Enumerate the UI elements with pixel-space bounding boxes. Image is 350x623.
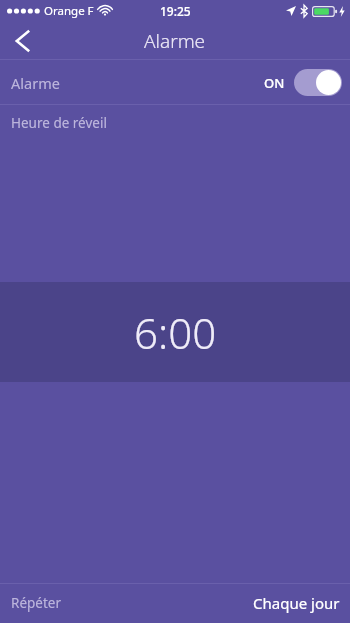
button[interactable]: Alarme [0, 60, 350, 105]
staticText: Chaque jour [253, 593, 340, 613]
button[interactable]: 6:00 [0, 282, 350, 382]
staticText: Orange F [44, 3, 94, 19]
staticText: Répéter [11, 594, 61, 612]
staticText: 6:00 [134, 304, 217, 361]
staticText: Alarme [11, 73, 60, 93]
staticText: Alarme [144, 28, 206, 54]
button[interactable]: Retour [0, 22, 44, 60]
button[interactable]: Répéter [0, 583, 350, 623]
staticText: 19:25 [160, 3, 191, 19]
staticText: Heure de réveil [11, 114, 107, 132]
staticText: ON [264, 74, 285, 92]
